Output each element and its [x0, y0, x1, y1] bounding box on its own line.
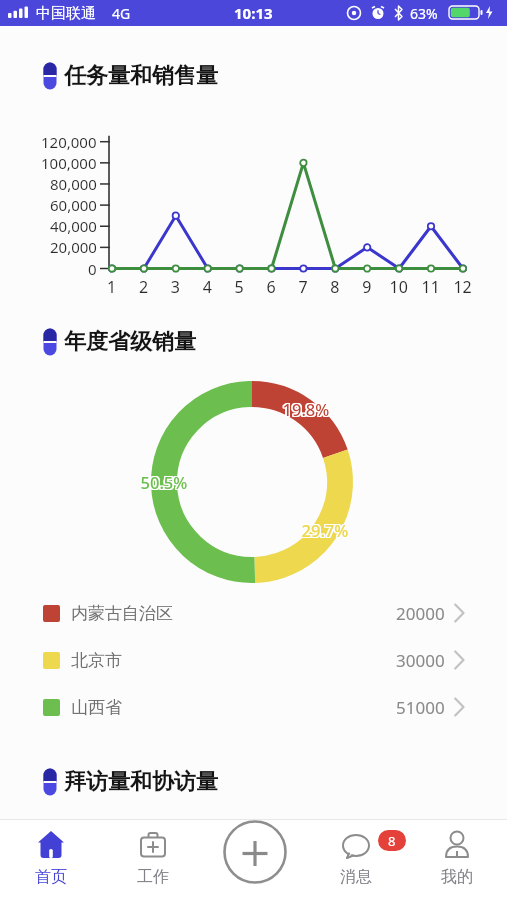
button[interactable]: 北京市: [0, 642, 507, 678]
staticText: 山西省: [71, 697, 122, 718]
staticText: 消息: [340, 867, 372, 887]
staticText: 63%: [410, 4, 438, 23]
staticText: 拜访量和协访量: [64, 768, 218, 796]
staticText: 8: [388, 832, 396, 850]
staticText: 51000: [396, 696, 445, 719]
button[interactable]: 内蒙古自治区: [0, 595, 507, 631]
staticText: 30000: [396, 649, 445, 672]
button[interactable]: 工作: [102, 819, 204, 900]
staticText: 年度省级销量: [64, 328, 196, 356]
staticText: 任务量和销售量: [64, 62, 218, 90]
staticText: 10:13: [234, 3, 273, 23]
staticText: 我的: [441, 867, 473, 887]
staticText: 内蒙古自治区: [71, 603, 173, 624]
button[interactable]: 山西省: [0, 689, 507, 725]
staticText: 北京市: [71, 650, 122, 671]
staticText: 首页: [35, 867, 67, 887]
button[interactable]: 8: [305, 819, 406, 900]
staticText: 4G: [112, 4, 131, 23]
button[interactable]: 我的: [406, 819, 507, 900]
staticText: 20000: [396, 602, 445, 625]
button[interactable]: 首页: [0, 819, 102, 900]
staticText: 工作: [137, 867, 169, 887]
staticText: 中国联通: [36, 4, 96, 23]
button[interactable]: [204, 819, 305, 900]
